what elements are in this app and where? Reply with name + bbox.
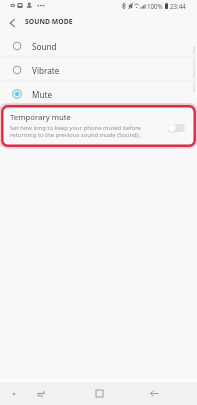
staticText: Temporary mute xyxy=(10,112,71,123)
staticText: SOUND MODE xyxy=(25,17,73,26)
staticText: Vibrate xyxy=(32,65,60,76)
button[interactable]: Temporary mute switch xyxy=(168,124,185,132)
staticText: Mute xyxy=(32,89,53,100)
button[interactable]: Recent apps xyxy=(27,382,55,405)
button[interactable]: Hide navigation bar xyxy=(5,382,22,405)
button[interactable]: Mute xyxy=(0,82,197,106)
staticText: 23:44 xyxy=(170,2,186,10)
button[interactable]: Home xyxy=(85,382,113,405)
button[interactable]: Navigate up xyxy=(0,12,25,30)
button[interactable]: Temporary mute xyxy=(1,105,196,147)
staticText: Sound xyxy=(32,41,57,52)
button[interactable]: Sound xyxy=(0,34,197,58)
staticText: 100% xyxy=(147,2,163,10)
button[interactable]: Back xyxy=(140,382,168,405)
staticText: Set how long to keep your phone muted be… xyxy=(10,124,141,139)
button[interactable]: Vibrate xyxy=(0,58,197,82)
